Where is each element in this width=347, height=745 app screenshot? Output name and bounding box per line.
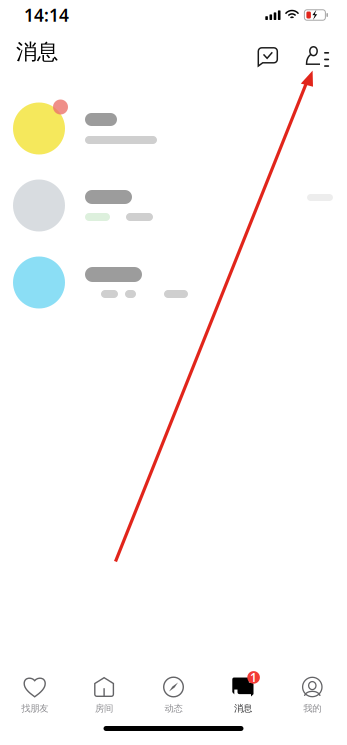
button[interactable] [0,244,347,321]
button[interactable]: Contacts [302,33,334,71]
staticText: 我的 [303,702,321,714]
button[interactable]: 1 [208,663,278,716]
staticText: 房间 [95,702,113,714]
button[interactable]: 找朋友 [0,663,69,716]
staticText: 消息 [234,702,252,714]
button[interactable]: 房间 [69,663,139,716]
button[interactable] [0,167,347,244]
button[interactable] [0,90,347,167]
button[interactable]: 动态 [139,663,208,716]
staticText: 找朋友 [21,702,48,714]
button[interactable]: 我的 [278,663,347,716]
staticText: 消息 [16,39,58,65]
staticText: 动态 [164,702,182,714]
button[interactable]: New message [253,33,281,71]
staticText: 1 [250,669,257,685]
staticText: 14:14 [24,3,69,26]
